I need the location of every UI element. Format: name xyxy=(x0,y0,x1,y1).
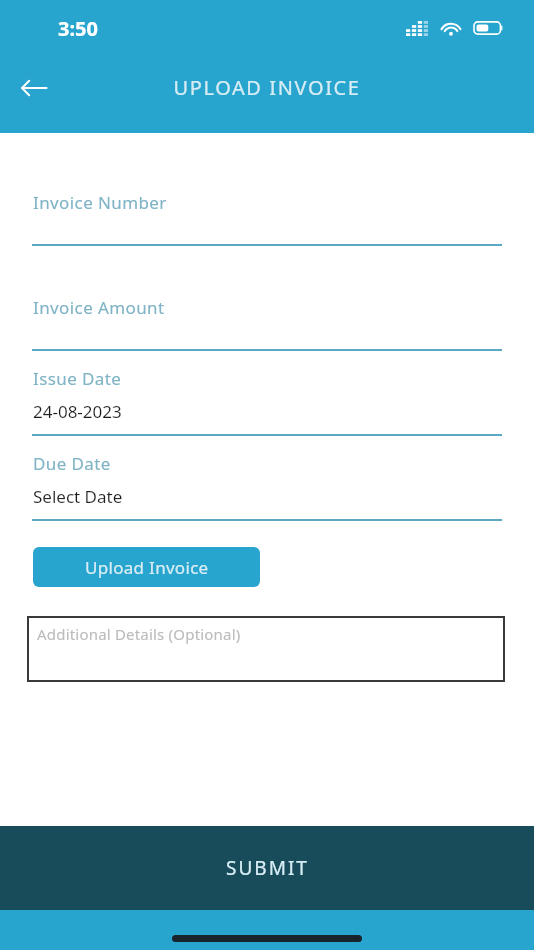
button[interactable]: Invoice Number xyxy=(0,191,534,246)
staticText: Upload Invoice xyxy=(85,556,209,579)
button[interactable]: Due Date xyxy=(0,452,534,521)
staticText: Select Date xyxy=(33,485,123,508)
staticText: SUBMIT xyxy=(226,855,309,881)
button[interactable]: Additional Details (Optional) xyxy=(27,616,505,682)
button[interactable]: SUBMIT xyxy=(0,826,534,910)
staticText: Invoice Amount xyxy=(33,296,165,319)
staticText: 3:50 xyxy=(58,15,98,42)
staticText: Issue Date xyxy=(33,367,122,390)
button[interactable]: Back xyxy=(12,66,56,110)
staticText: 24-08-2023 xyxy=(33,400,122,423)
staticText: Due Date xyxy=(33,452,111,475)
button[interactable]: Upload Invoice xyxy=(33,547,260,587)
staticText: UPLOAD INVOICE xyxy=(0,74,534,101)
staticText: Additional Details (Optional) xyxy=(37,624,241,644)
button[interactable]: Issue Date xyxy=(0,367,534,436)
button[interactable]: Invoice Amount xyxy=(0,296,534,351)
staticText: Invoice Number xyxy=(33,191,167,214)
